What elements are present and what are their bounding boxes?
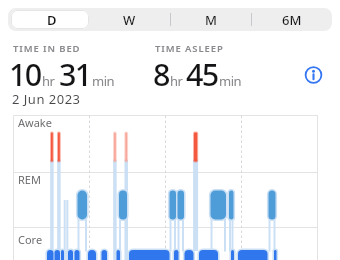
staticText: hr (42, 72, 55, 90)
staticText: 45 (186, 53, 218, 95)
staticText: 6M (282, 11, 302, 29)
staticText: min (219, 72, 242, 90)
staticText: M (205, 11, 217, 29)
staticText: 31 (59, 53, 91, 95)
staticText: Core (18, 232, 43, 247)
button[interactable] (304, 66, 324, 86)
staticText: D (47, 11, 57, 29)
button[interactable]: W (89, 8, 170, 31)
button[interactable]: 6M (251, 8, 332, 31)
staticText: REM (18, 172, 41, 187)
staticText: 8 (153, 53, 169, 95)
staticText: TIME ASLEEP (155, 42, 224, 55)
button[interactable]: M (170, 8, 251, 31)
staticText: Awake (18, 115, 52, 130)
staticText: W (123, 11, 136, 29)
staticText: 10 (9, 53, 41, 95)
staticText: hr (170, 72, 183, 90)
staticText: TIME IN BED (13, 42, 81, 55)
staticText: 2 Jun 2023 (12, 90, 81, 108)
staticText: min (92, 72, 115, 90)
button[interactable]: D (11, 8, 92, 31)
